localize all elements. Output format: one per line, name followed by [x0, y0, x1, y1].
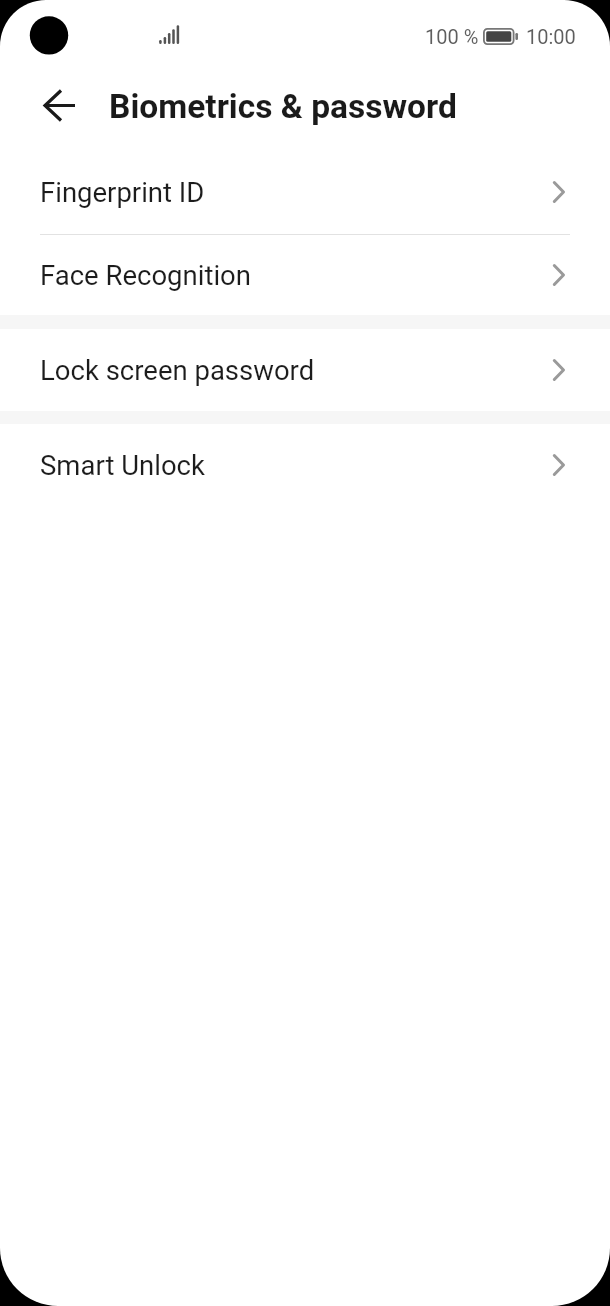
button[interactable] [40, 88, 76, 124]
button[interactable]: Face Recognition [0, 235, 610, 315]
button[interactable]: Smart Unlock [0, 424, 610, 506]
staticText: Biometrics & password [109, 87, 457, 126]
staticText: 10:00 [526, 25, 576, 48]
staticText: Lock screen password [40, 354, 315, 386]
button[interactable]: Fingerprint ID [0, 150, 610, 234]
staticText: Face Recognition [40, 259, 251, 291]
button[interactable]: Lock screen password [0, 329, 610, 411]
staticText: Smart Unlock [40, 449, 205, 481]
staticText: 100 % [425, 25, 479, 48]
staticText: Fingerprint ID [40, 176, 205, 208]
